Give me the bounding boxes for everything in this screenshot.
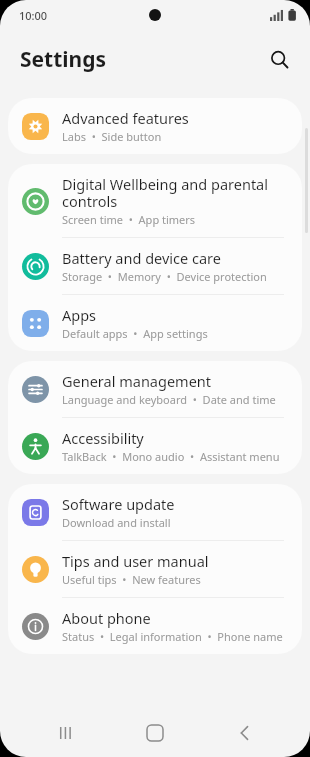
button[interactable]: Tips and user manual [8,541,302,598]
button[interactable]: Advanced features [8,98,302,154]
staticText: Advanced features [62,108,189,128]
button[interactable]: Back [221,709,269,757]
staticText: 10:00 [19,8,48,23]
staticText: Accessibility [62,428,144,448]
button[interactable]: Apps [8,295,302,351]
staticText: About phone [62,608,151,628]
button[interactable]: Software update [8,484,302,541]
button[interactable]: Home [131,709,179,757]
staticText: General management [62,371,212,391]
staticText: Status • Legal information • Phone name [62,629,283,644]
staticText: Battery and device care [62,248,221,268]
button[interactable]: General management [8,361,302,418]
staticText: Tips and user manual [62,551,209,571]
staticText: Settings [20,45,107,74]
staticText: Labs • Side button [62,129,162,144]
button[interactable]: About phone [8,598,302,654]
button[interactable]: Search [262,42,296,76]
button[interactable]: Digital Wellbeing and parental controls [8,164,302,238]
staticText: Storage • Memory • Device protection [62,269,267,284]
staticText: Apps [62,305,97,325]
staticText: Language and keyboard • Date and time [62,392,276,407]
button[interactable]: Recent apps [42,709,90,757]
staticText: Software update [62,494,175,514]
staticText: Download and install [62,515,171,530]
button[interactable]: Battery and device care [8,238,302,295]
staticText: Default apps • App settings [62,326,208,341]
button[interactable]: Accessibility [8,418,302,474]
staticText: TalkBack • Mono audio • Assistant menu [62,449,280,464]
staticText: Screen time • App timers [62,212,196,227]
staticText: Digital Wellbeing and parental controls [62,174,268,211]
staticText: Useful tips • New features [62,572,201,587]
